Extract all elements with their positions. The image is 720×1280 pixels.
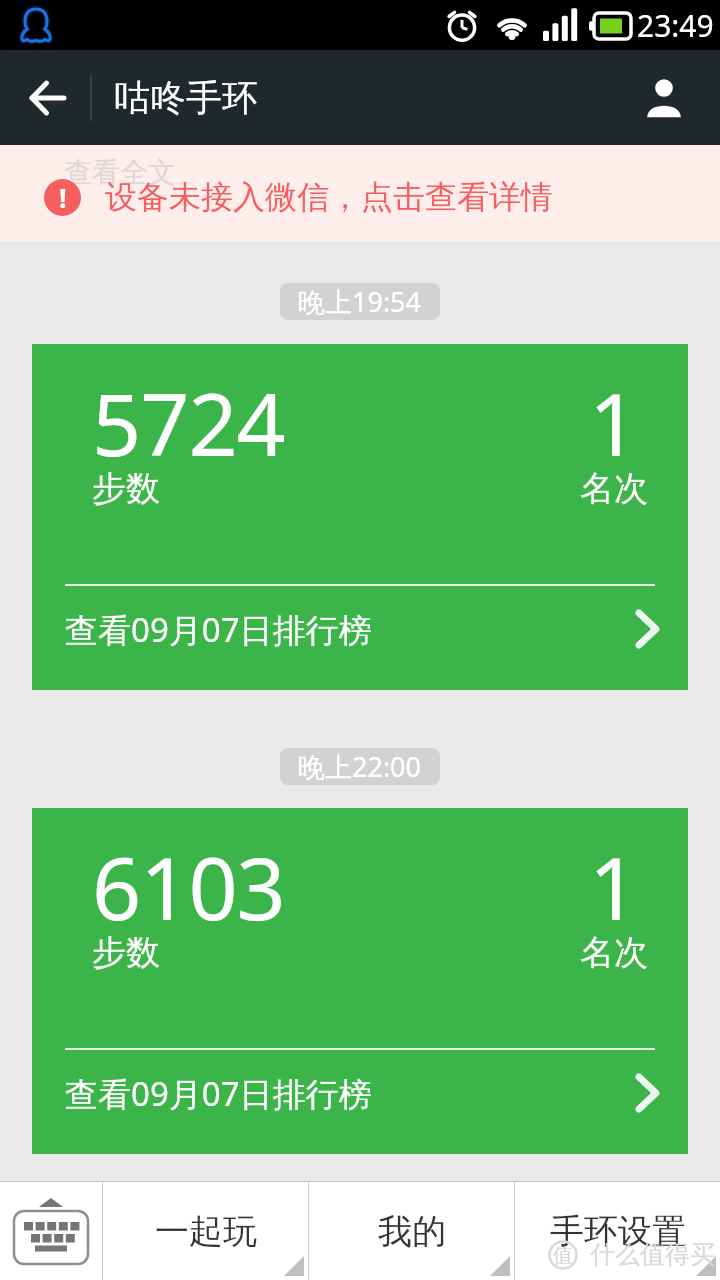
- staticText: 名次: [580, 931, 648, 974]
- button[interactable]: [0, 50, 96, 145]
- staticText: 1: [589, 828, 639, 945]
- button[interactable]: [608, 50, 720, 145]
- staticText: 名次: [580, 467, 648, 510]
- staticText: 一起玩: [155, 1210, 257, 1253]
- staticText: 步数: [92, 467, 160, 510]
- staticText: 咕咚手环: [114, 75, 258, 120]
- staticText: 查看09月07日排行榜: [65, 1071, 372, 1116]
- staticText: !: [59, 179, 67, 216]
- staticText: 设备未接入微信，点击查看详情: [105, 177, 553, 217]
- staticText: 我的: [378, 1210, 446, 1253]
- button[interactable]: 我的: [309, 1182, 514, 1280]
- staticText: 5724: [92, 364, 285, 481]
- staticText: 值: [553, 1243, 573, 1268]
- staticText: 查看全文: [64, 155, 176, 190]
- button[interactable]: [0, 1182, 102, 1280]
- staticText: 晚上22:00: [298, 748, 422, 785]
- staticText: 晚上19:54: [298, 283, 422, 320]
- staticText: 1: [589, 364, 639, 481]
- button[interactable]: 6103: [32, 808, 688, 1154]
- staticText: 23:49: [637, 5, 714, 46]
- staticText: 步数: [92, 931, 160, 974]
- button[interactable]: 查看全文: [0, 145, 720, 241]
- button[interactable]: 5724: [32, 344, 688, 690]
- staticText: 手环设置: [550, 1210, 686, 1253]
- staticText: 6103: [92, 828, 285, 945]
- staticText: 查看09月07日排行榜: [65, 607, 372, 652]
- button[interactable]: 手环设置: [515, 1182, 720, 1280]
- button[interactable]: 一起玩: [103, 1182, 308, 1280]
- staticText: 什么值得买: [590, 1239, 715, 1270]
